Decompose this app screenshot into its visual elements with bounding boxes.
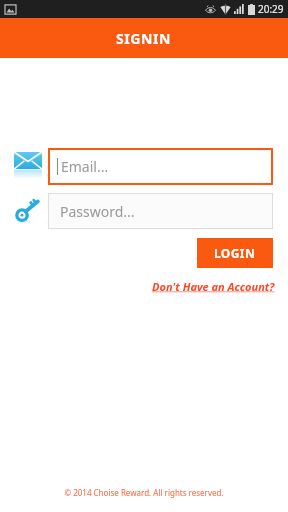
button[interactable]: Email... [48, 148, 273, 185]
button[interactable]: Password... [48, 193, 273, 229]
staticText: © 2014 Choise Reward. All rights reserve… [0, 487, 288, 498]
staticText: SIGNIN [116, 29, 172, 48]
staticText: Password... [60, 202, 135, 221]
button[interactable]: Don't Have an Account? [152, 279, 275, 294]
staticText: Email... [61, 157, 109, 176]
staticText: LOGIN [214, 245, 256, 261]
button[interactable]: LOGIN [197, 238, 273, 268]
staticText: Don't Have an Account? [152, 279, 275, 294]
staticText: 20:29 [258, 2, 284, 16]
